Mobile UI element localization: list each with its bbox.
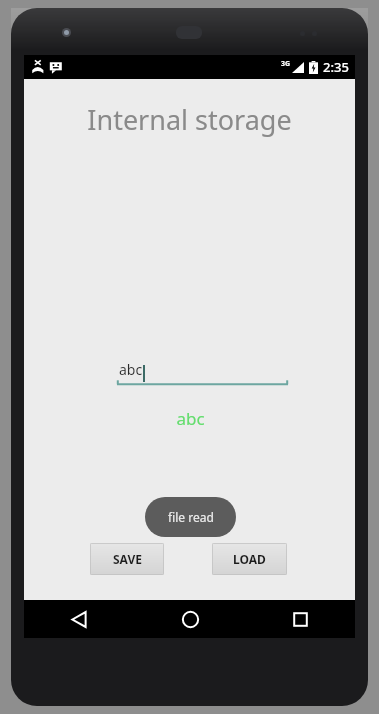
staticText: SAVE	[113, 551, 142, 567]
staticText: Internal storage	[87, 101, 292, 138]
button[interactable]: Back	[24, 600, 135, 638]
button[interactable]: Recent apps	[245, 600, 355, 638]
button[interactable]: SAVE	[90, 543, 164, 575]
button[interactable]: LOAD	[212, 543, 287, 575]
staticText: abc	[119, 360, 143, 379]
button[interactable]: abc	[117, 355, 288, 387]
staticText: file read	[168, 509, 214, 525]
staticText: 3G	[281, 59, 291, 69]
staticText: abc	[176, 407, 205, 430]
staticText: 2:35	[323, 58, 349, 76]
button[interactable]: Home	[135, 600, 245, 638]
staticText: LOAD	[233, 551, 266, 567]
